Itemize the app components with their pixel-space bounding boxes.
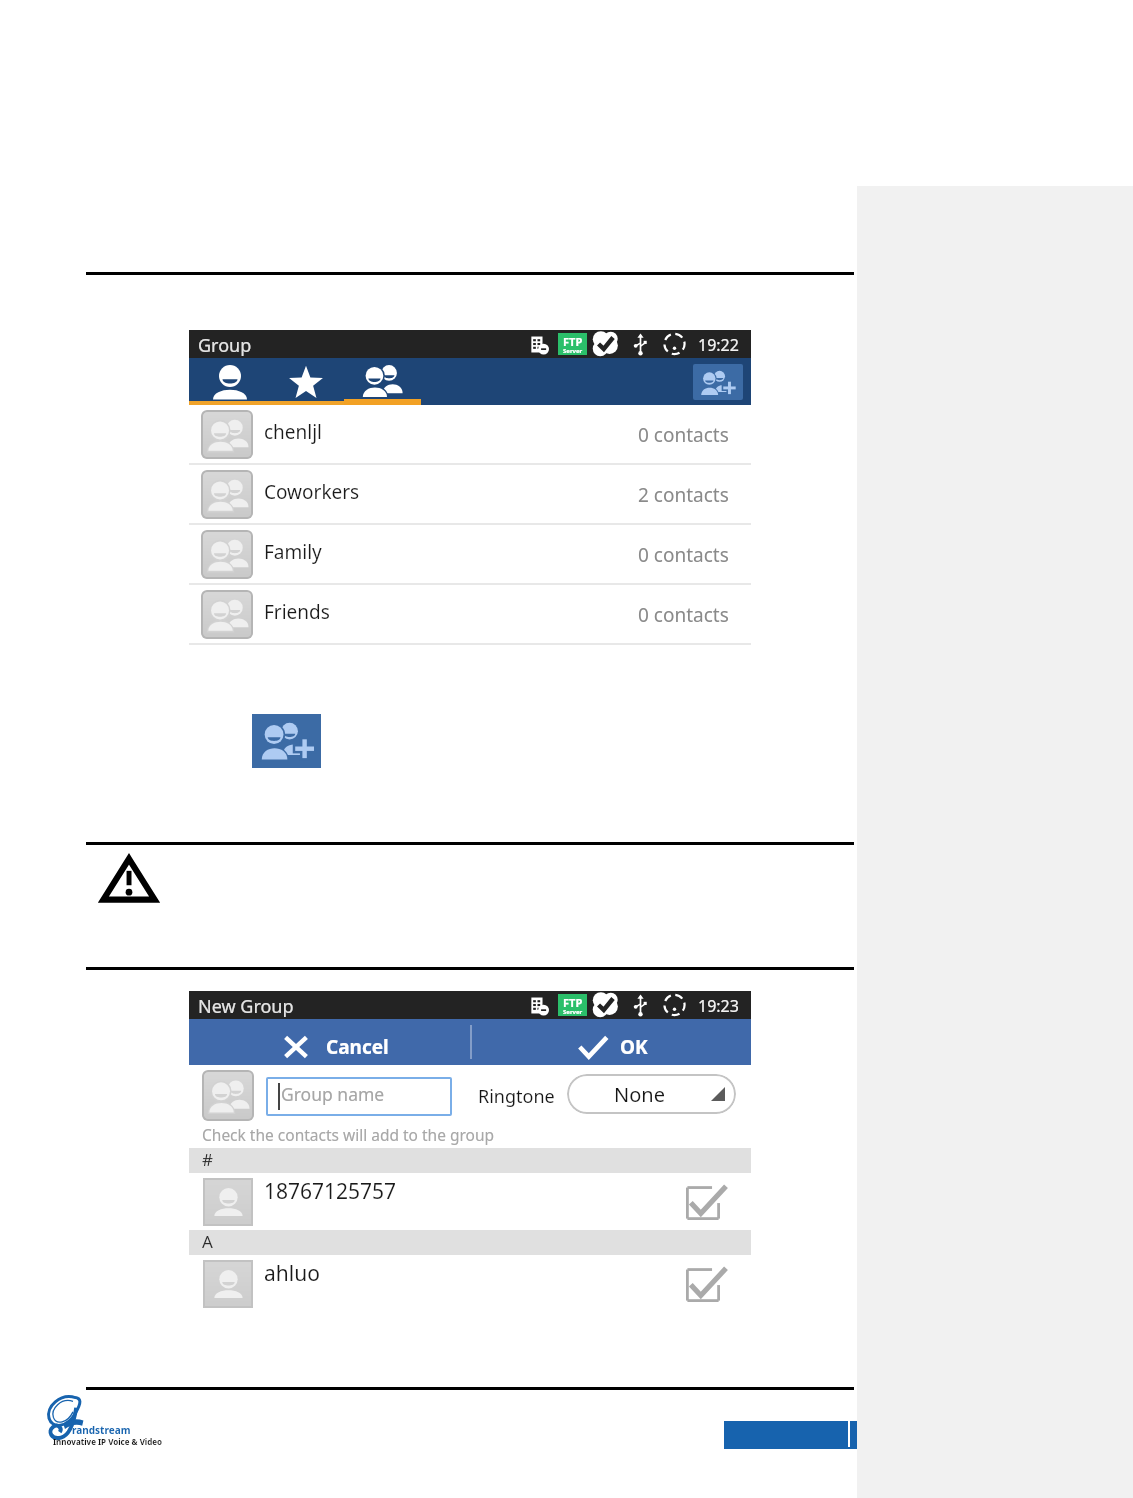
button[interactable]: chenljl bbox=[189, 405, 751, 465]
staticText: FTP bbox=[563, 334, 583, 349]
button[interactable]: Add group bbox=[252, 714, 321, 768]
button[interactable]: Family bbox=[189, 525, 751, 585]
button[interactable]: None bbox=[567, 1074, 736, 1114]
staticText: Check the contacts will add to the group bbox=[202, 1124, 495, 1145]
staticText: Server bbox=[563, 1008, 583, 1015]
button[interactable]: ahluo bbox=[189, 1255, 751, 1312]
staticText: 0 contacts bbox=[638, 602, 729, 628]
button[interactable]: Cancel bbox=[189, 1019, 471, 1065]
staticText: 19:23 bbox=[698, 995, 739, 1017]
staticText: Ringtone bbox=[478, 1084, 555, 1109]
staticText: Family bbox=[264, 539, 322, 565]
staticText: A bbox=[202, 1230, 213, 1253]
button[interactable]: Contacts bbox=[189, 358, 266, 405]
staticText: New Group bbox=[198, 994, 294, 1019]
staticText: 18767125757 bbox=[264, 1177, 397, 1206]
button[interactable]: 18767125757 bbox=[189, 1173, 751, 1230]
button[interactable]: OK bbox=[472, 1019, 751, 1065]
staticText: None bbox=[614, 1081, 665, 1108]
staticText: Server bbox=[563, 347, 583, 354]
staticText: 0 contacts bbox=[638, 542, 729, 568]
button[interactable]: Favourites bbox=[266, 358, 343, 405]
staticText: Innovative IP Voice & Video bbox=[53, 1436, 163, 1447]
staticText: 0 contacts bbox=[638, 422, 729, 448]
staticText: # bbox=[202, 1148, 213, 1171]
staticText: randstream bbox=[72, 1423, 131, 1437]
staticText: Coworkers bbox=[264, 479, 360, 505]
staticText: Friends bbox=[264, 599, 330, 625]
button[interactable]: Friends bbox=[189, 585, 751, 645]
staticText: 2 contacts bbox=[638, 482, 729, 508]
staticText: ahluo bbox=[264, 1259, 320, 1288]
button[interactable]: Coworkers bbox=[189, 465, 751, 525]
staticText: Cancel bbox=[326, 1034, 389, 1060]
button[interactable]: Groups bbox=[343, 358, 420, 405]
staticText: Group name bbox=[281, 1082, 385, 1106]
button[interactable]: Add group bbox=[693, 364, 743, 400]
staticText: Group bbox=[198, 333, 252, 358]
staticText: FTP bbox=[563, 995, 583, 1010]
staticText: chenljl bbox=[264, 419, 323, 445]
staticText: OK bbox=[620, 1034, 648, 1060]
button[interactable]: Group name bbox=[266, 1077, 452, 1116]
staticText: 19:22 bbox=[698, 334, 739, 356]
